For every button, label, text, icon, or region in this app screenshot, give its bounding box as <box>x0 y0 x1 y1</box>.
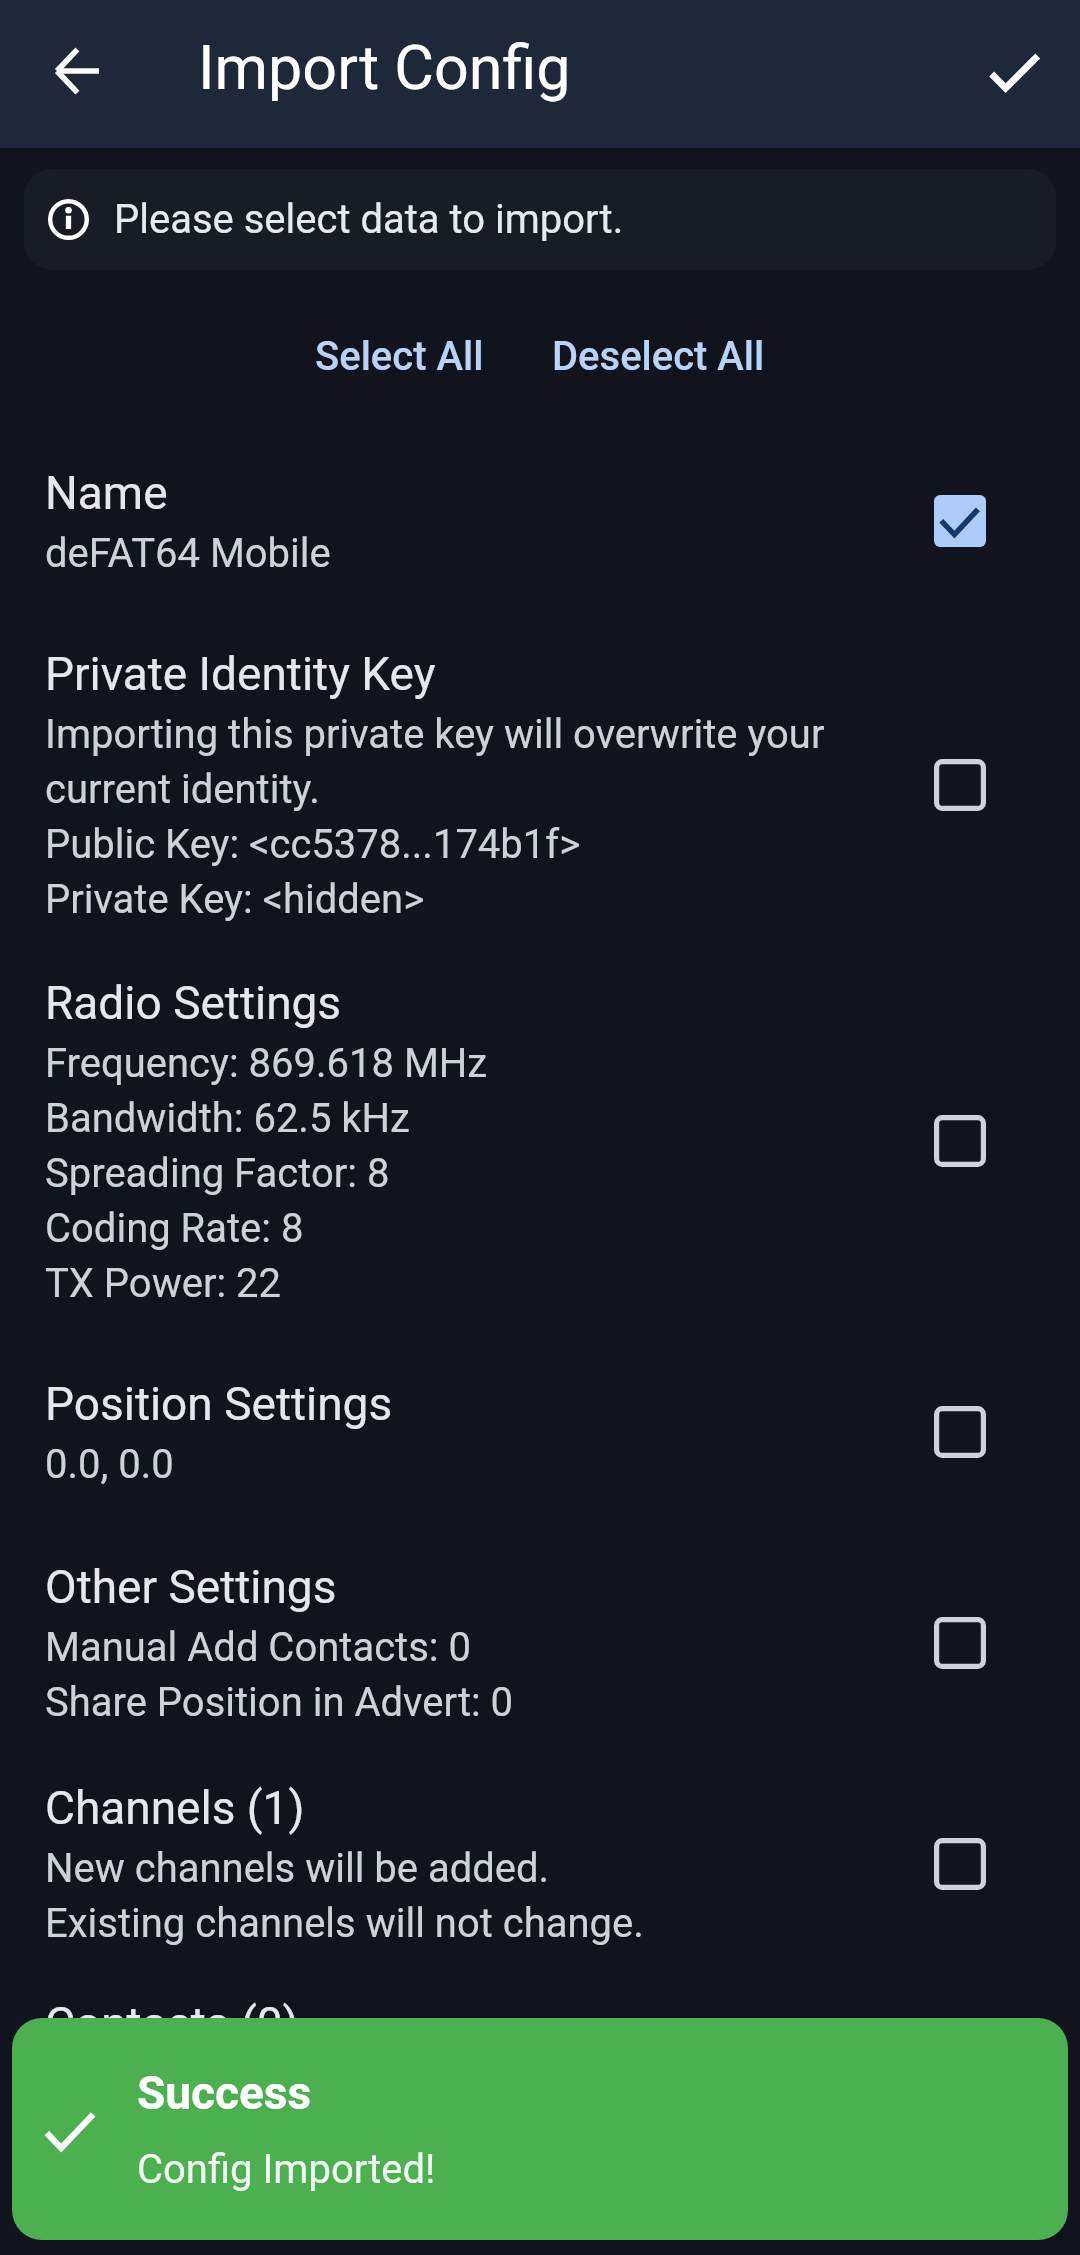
button[interactable]: Radio Settings <box>0 924 1080 1308</box>
button[interactable]: Toggle selection <box>912 1816 1008 1912</box>
button[interactable]: Toggle selection <box>912 737 1008 833</box>
staticText: Spreading Factor: 8 <box>45 1143 390 1198</box>
staticText: Private Identity Key <box>45 635 436 704</box>
staticText: Coding Rate: 8 <box>45 1198 304 1253</box>
button[interactable]: Name <box>0 392 1080 578</box>
button[interactable]: Success <box>12 2018 1068 2240</box>
staticText: Existing channels will not change. <box>45 1893 644 1948</box>
button[interactable]: Contacts (0) <box>0 1948 1080 2109</box>
button[interactable]: Private Identity Key <box>0 578 1080 924</box>
staticText: Importing this private key will overwrit… <box>45 704 892 814</box>
staticText: TX Power: 22 <box>45 1253 282 1308</box>
button[interactable]: Toggle selection <box>912 1384 1008 1480</box>
staticText: Bandwidth: 62.5 kHz <box>45 1088 410 1143</box>
button[interactable]: Position Settings <box>0 1308 1080 1489</box>
button[interactable]: Other Settings <box>0 1489 1080 1727</box>
staticText: Other Settings <box>45 1548 337 1617</box>
staticText: Manual Add Contacts: 0 <box>45 1617 471 1672</box>
staticText: New channels will be added. <box>45 1838 550 1893</box>
staticText: Position Settings <box>45 1365 393 1434</box>
staticText: Public Key: <cc5378...174b1f> <box>45 814 581 869</box>
button[interactable]: Confirm import <box>959 19 1069 129</box>
staticText: Private Key: <hidden> <box>45 869 425 924</box>
staticText: Radio Settings <box>45 964 342 1033</box>
staticText: Share Position in Advert: 0 <box>45 1672 514 1727</box>
button[interactable]: Toggle selection <box>912 1595 1008 1691</box>
button[interactable]: Deselect All <box>518 321 799 392</box>
staticText: Name <box>45 454 168 523</box>
staticText: Frequency: 869.618 MHz <box>45 1033 488 1088</box>
staticText: Contacts (0) <box>45 1985 299 2054</box>
button[interactable]: Toggle selection <box>912 1093 1008 1189</box>
staticText: 0.0, 0.0 <box>45 1434 174 1489</box>
staticText: Select All <box>315 333 484 380</box>
staticText: deFAT64 Mobile <box>45 523 331 578</box>
staticText: Config Imported! <box>137 2146 436 2193</box>
button[interactable]: Toggle selection <box>912 473 1008 569</box>
staticText: Import Config <box>198 32 571 103</box>
button[interactable]: Channels (1) <box>0 1727 1080 1948</box>
staticText: Deselect All <box>552 333 765 380</box>
staticText: New contacts will be added. <box>45 2054 544 2109</box>
staticText: Please select data to import. <box>114 196 624 243</box>
staticText: Channels (1) <box>45 1769 305 1838</box>
button[interactable]: Back <box>22 16 132 126</box>
staticText: Success <box>137 2066 312 2120</box>
button[interactable]: Select All <box>281 321 518 392</box>
